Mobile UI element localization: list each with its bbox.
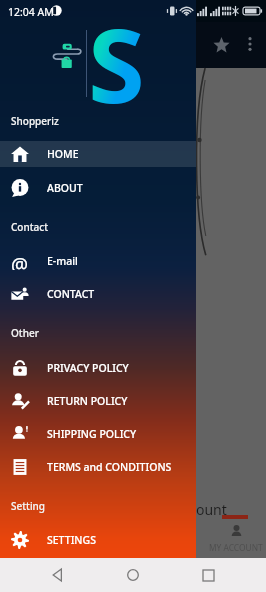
button[interactable]: Back [41, 558, 75, 592]
button[interactable]: Favourites [207, 31, 235, 59]
staticText: MY ACCOUNT [209, 542, 263, 553]
staticText: SETTINGS [47, 533, 96, 547]
staticText: Contact [11, 220, 49, 234]
button[interactable]: RETURN POLICY [0, 388, 196, 414]
button[interactable]: ABOUT [0, 175, 196, 201]
staticText: ABOUT [47, 181, 83, 195]
staticText: S [88, 0, 145, 133]
staticText: HOME [47, 147, 79, 161]
staticText: ount [196, 500, 227, 519]
button[interactable]: @ [0, 248, 196, 274]
button[interactable]: PRIVACY POLICY [0, 355, 196, 381]
staticText: 12:04 AM [8, 5, 54, 19]
staticText: SHIPPING POLICY [47, 427, 137, 441]
button[interactable]: Home [116, 558, 150, 592]
staticText: Shopperiz [11, 114, 59, 128]
staticText: RETURN POLICY [47, 394, 128, 408]
staticText: @ [11, 252, 29, 270]
staticText: Setting [11, 499, 46, 513]
button[interactable]: HOME [0, 141, 196, 167]
staticText: CONTACT [47, 287, 95, 301]
staticText: E-mail [47, 254, 78, 268]
button[interactable]: CONTACT [0, 281, 196, 307]
button[interactable]: Recents [191, 558, 225, 592]
button[interactable]: MY ACCOUNT [206, 524, 266, 560]
button[interactable]: TERMS and CONDITIONS [0, 454, 196, 480]
staticText: PRIVACY POLICY [47, 361, 129, 375]
staticText: TERMS and CONDITIONS [47, 460, 172, 474]
staticText: Other [11, 326, 39, 340]
button[interactable]: SHIPPING POLICY [0, 421, 196, 447]
button[interactable]: More options [237, 31, 263, 57]
button[interactable]: SETTINGS [0, 527, 196, 553]
